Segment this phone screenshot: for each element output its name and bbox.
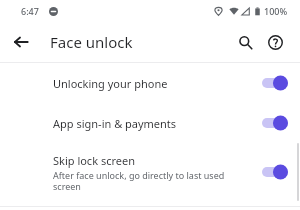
- staticText: Face unlock: [50, 32, 133, 52]
- button[interactable]: App sign-in & payments: [0, 103, 300, 143]
- button[interactable]: Toggle: [262, 75, 288, 91]
- staticText: Unlocking your phone: [53, 76, 168, 91]
- button[interactable]: Help: [263, 30, 287, 54]
- button[interactable]: Unlocking your phone: [0, 63, 300, 103]
- button[interactable]: Search: [233, 30, 257, 54]
- button[interactable]: Toggle: [262, 115, 288, 131]
- staticText: 6:47: [21, 5, 39, 17]
- button[interactable]: Back: [9, 30, 33, 54]
- staticText: App sign-in & payments: [53, 116, 177, 131]
- staticText: After face unlock, go directly to last u…: [53, 169, 239, 192]
- button[interactable]: Toggle: [262, 164, 288, 180]
- staticText: Skip lock screen: [53, 153, 135, 168]
- staticText: 100%: [264, 5, 288, 17]
- button[interactable]: Skip lock screen: [0, 143, 300, 201]
